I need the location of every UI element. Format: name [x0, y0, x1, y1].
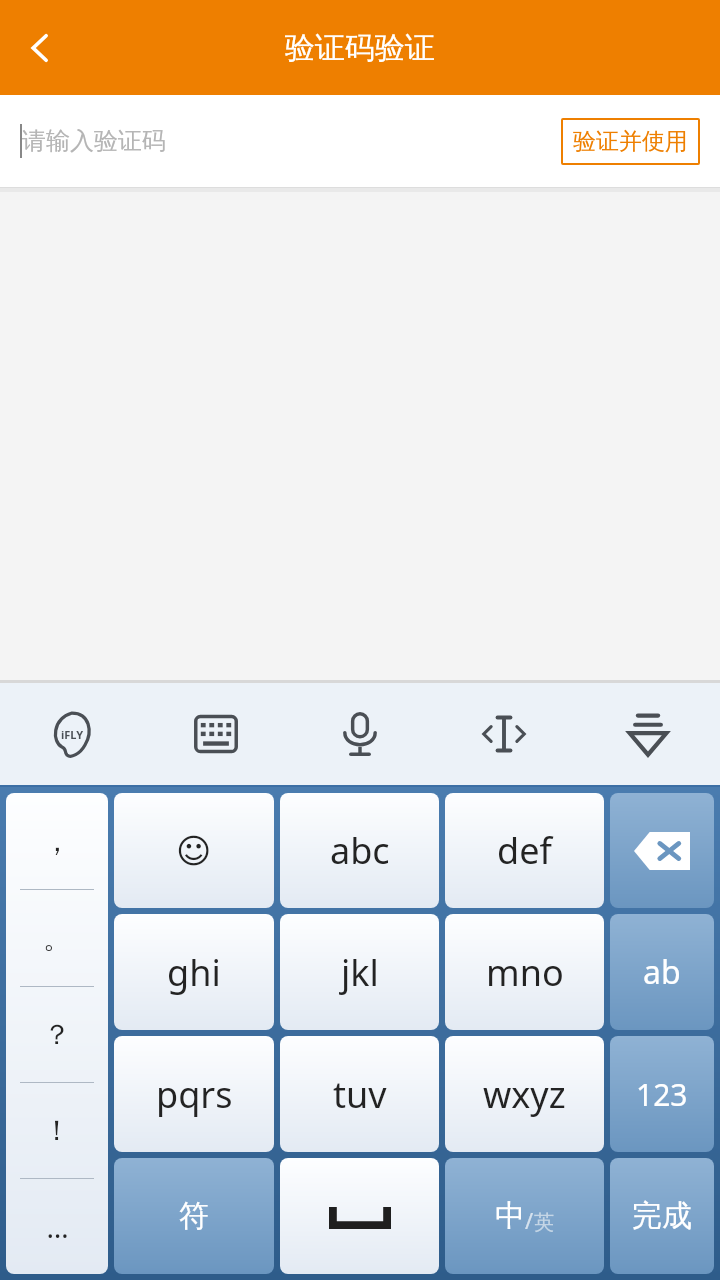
- button[interactable]: Cursor move: [432, 683, 576, 785]
- button[interactable]: 。: [6, 890, 108, 986]
- staticText: abc: [330, 826, 390, 875]
- button[interactable]: Voice input: [288, 683, 432, 785]
- staticText: ，: [43, 824, 71, 859]
- button[interactable]: ？: [6, 987, 108, 1082]
- staticText: ？: [43, 1017, 71, 1052]
- staticText: ☺: [176, 831, 212, 871]
- button[interactable]: mno: [445, 914, 604, 1030]
- button[interactable]: 中: [445, 1158, 604, 1274]
- button[interactable]: 123: [610, 1036, 714, 1152]
- staticText: ab: [643, 950, 681, 994]
- button[interactable]: 符: [114, 1158, 274, 1274]
- staticText: pqrs: [156, 1070, 233, 1119]
- button[interactable]: 完成: [610, 1158, 714, 1274]
- staticText: 123: [636, 1074, 688, 1115]
- staticText: def: [497, 826, 552, 875]
- button[interactable]: Hide keyboard: [576, 683, 720, 785]
- staticText: …: [46, 1208, 69, 1246]
- button[interactable]: pqrs: [114, 1036, 274, 1152]
- button[interactable]: ！: [6, 1083, 108, 1178]
- button[interactable]: def: [445, 793, 604, 908]
- button[interactable]: iFLY logo: [0, 683, 144, 785]
- button[interactable]: jkl: [280, 914, 439, 1030]
- button[interactable]: Space: [280, 1158, 439, 1274]
- button[interactable]: wxyz: [445, 1036, 604, 1152]
- button[interactable]: ，: [6, 793, 108, 889]
- button[interactable]: Keyboard layout: [144, 683, 288, 785]
- button[interactable]: 请输入验证码: [20, 95, 561, 187]
- button[interactable]: …: [6, 1179, 108, 1274]
- button[interactable]: abc: [280, 793, 439, 908]
- staticText: 英: [534, 1210, 554, 1235]
- staticText: mno: [486, 948, 564, 997]
- staticText: wxyz: [483, 1070, 566, 1119]
- staticText: 符: [179, 1197, 209, 1235]
- staticText: iFLY: [61, 727, 84, 742]
- button[interactable]: ☺: [114, 793, 274, 908]
- staticText: tuv: [333, 1070, 387, 1119]
- staticText: 完成: [632, 1197, 692, 1235]
- staticText: /: [525, 1205, 534, 1235]
- staticText: 验证码验证: [285, 29, 435, 67]
- staticText: 。: [43, 921, 71, 956]
- staticText: ghi: [167, 948, 221, 997]
- button[interactable]: Back: [0, 0, 80, 95]
- button[interactable]: tuv: [280, 1036, 439, 1152]
- staticText: 中: [495, 1197, 525, 1235]
- button[interactable]: Delete: [610, 793, 714, 908]
- button[interactable]: ab: [610, 914, 714, 1030]
- staticText: 验证并使用: [573, 127, 688, 156]
- staticText: ！: [43, 1113, 71, 1148]
- button[interactable]: 验证并使用: [561, 118, 700, 165]
- staticText: 请输入验证码: [22, 126, 166, 156]
- staticText: jkl: [341, 948, 379, 997]
- button[interactable]: ghi: [114, 914, 274, 1030]
